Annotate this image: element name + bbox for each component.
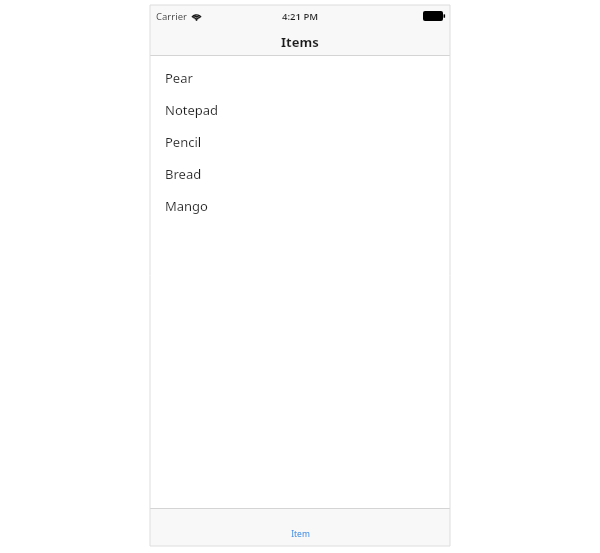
staticText: Carrier bbox=[156, 10, 187, 23]
staticText: Notepad bbox=[165, 101, 219, 119]
staticText: Pear bbox=[165, 69, 193, 87]
button[interactable]: Pencil bbox=[150, 126, 450, 158]
button[interactable]: Pear bbox=[150, 62, 450, 94]
button[interactable]: Item bbox=[283, 526, 318, 542]
other: Wi-Fi signal bbox=[191, 12, 202, 21]
other: Battery full bbox=[423, 11, 445, 21]
staticText: Mango bbox=[165, 197, 208, 215]
button[interactable]: Bread bbox=[150, 158, 450, 190]
staticText: Items bbox=[281, 33, 319, 51]
staticText: Bread bbox=[165, 165, 202, 183]
staticText: Item bbox=[291, 528, 310, 540]
button[interactable]: Mango bbox=[150, 190, 450, 222]
staticText: Pencil bbox=[165, 133, 202, 151]
button[interactable]: Notepad bbox=[150, 94, 450, 126]
staticText: 4:21 PM bbox=[282, 10, 319, 23]
